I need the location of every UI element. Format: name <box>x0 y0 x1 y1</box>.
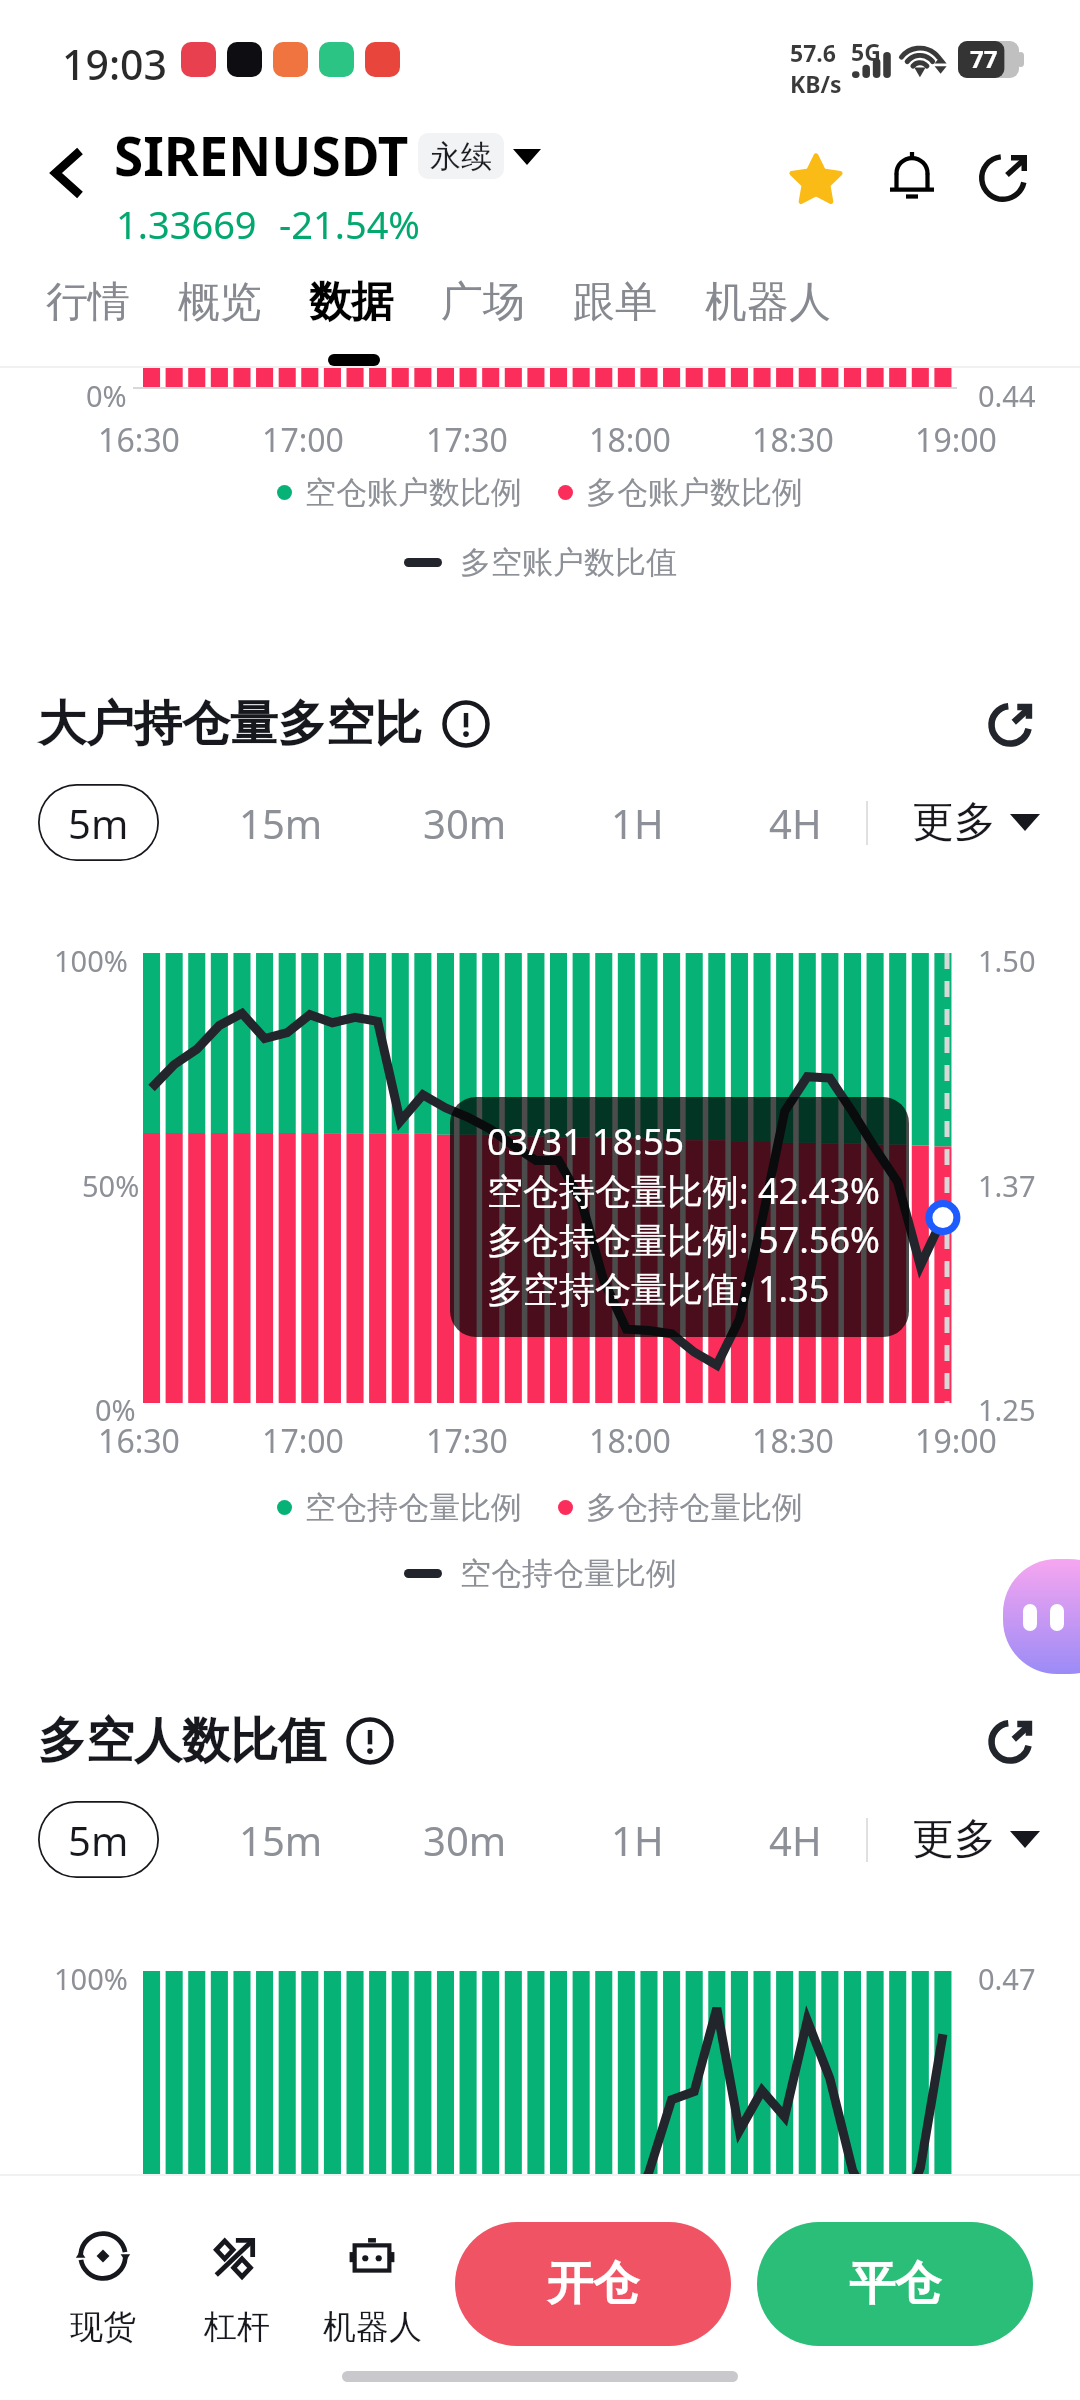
button[interactable]: 平仓 <box>757 2222 1033 2346</box>
staticText: 1.37 <box>978 1166 1036 1205</box>
staticText: 18:30 <box>723 1419 863 1463</box>
staticText: 空仓账户数比例 <box>305 473 522 512</box>
button[interactable]: 数据 <box>309 276 393 329</box>
staticText: 0% <box>86 376 127 415</box>
staticText: -21.54% <box>279 198 420 250</box>
staticText: SIRENUSDT <box>114 119 409 191</box>
staticText: 多仓持仓量比例: 57.56% <box>487 1215 880 1264</box>
button[interactable]: 跟单 <box>573 276 657 329</box>
staticText: 行情 <box>46 276 130 329</box>
button[interactable]: 更多 <box>912 1801 1040 1878</box>
staticText: 大户持仓量多空比 <box>38 694 422 754</box>
staticText: 100% <box>54 1959 128 1998</box>
staticText: 平仓 <box>849 2255 941 2313</box>
button[interactable]: Share <box>965 137 1045 217</box>
staticText: 1.33669 <box>116 198 257 250</box>
button[interactable]: 机器人 <box>705 276 831 329</box>
button[interactable]: 广场 <box>441 276 525 329</box>
staticText: 18:00 <box>560 1419 700 1463</box>
staticText: KB/s <box>790 68 842 99</box>
staticText: 永续 <box>430 137 492 176</box>
staticText: 17:00 <box>233 1419 373 1463</box>
staticText: 4H <box>769 1813 822 1867</box>
staticText: 1.50 <box>978 941 1036 980</box>
button[interactable]: 5m <box>38 784 159 861</box>
button[interactable]: 更多 <box>912 784 1040 861</box>
staticText: 1H <box>611 1813 664 1867</box>
staticText: 1.25 <box>978 1390 1036 1429</box>
button[interactable]: Expand chart <box>978 694 1046 754</box>
button[interactable]: 1H <box>611 1801 664 1878</box>
staticText: 多空账户数比值 <box>460 543 677 582</box>
staticText: 5G <box>851 36 881 67</box>
staticText: 17:00 <box>233 418 373 462</box>
button[interactable]: 永续 <box>418 133 504 179</box>
staticText: 多空持仓量比值: 1.35 <box>487 1264 830 1313</box>
staticText: 机器人 <box>323 2306 422 2348</box>
staticText: 概览 <box>178 276 262 329</box>
button[interactable]: 杠杆 <box>172 2228 302 2348</box>
staticText: 空仓持仓量比例 <box>305 1488 522 1527</box>
button[interactable]: 1H <box>611 784 664 861</box>
staticText: 17:30 <box>397 418 537 462</box>
staticText: 17:30 <box>397 1419 537 1463</box>
button[interactable]: 4H <box>769 784 822 861</box>
button[interactable]: 30m <box>423 784 507 861</box>
button[interactable]: 开仓 <box>455 2222 731 2346</box>
staticText: 更多 <box>912 796 996 849</box>
staticText: 5m <box>68 796 129 850</box>
button[interactable]: 30m <box>423 1801 507 1878</box>
button[interactable]: 5m <box>38 1801 159 1878</box>
button[interactable]: 机器人 <box>307 2228 437 2348</box>
staticText: 30m <box>423 796 507 850</box>
staticText: 57.6 <box>790 37 836 68</box>
staticText: 现货 <box>70 2306 136 2348</box>
staticText: 0.44 <box>978 376 1036 415</box>
button[interactable]: 15m <box>239 1801 323 1878</box>
staticText: 18:30 <box>723 418 863 462</box>
staticText: 19:03 <box>62 36 167 92</box>
button[interactable]: Back <box>28 132 110 214</box>
staticText: 跟单 <box>573 276 657 329</box>
staticText: 19:00 <box>886 418 1026 462</box>
staticText: 77 <box>970 42 998 75</box>
staticText: 空仓持仓量比例 <box>460 1554 677 1593</box>
staticText: 16:30 <box>69 418 209 462</box>
staticText: 5m <box>68 1813 129 1867</box>
button[interactable]: 现货 <box>38 2228 168 2348</box>
staticText: 机器人 <box>705 276 831 329</box>
button[interactable]: 概览 <box>178 276 262 329</box>
staticText: 19:00 <box>886 1419 1026 1463</box>
staticText: 数据 <box>309 276 393 329</box>
button[interactable]: Expand chart <box>978 1711 1046 1771</box>
staticText: 15m <box>239 1813 323 1867</box>
staticText: 杠杆 <box>204 2306 270 2348</box>
button[interactable]: 大户持仓量多空比 <box>38 694 490 754</box>
staticText: 多仓账户数比例 <box>586 473 803 512</box>
staticText: 1H <box>611 796 664 850</box>
staticText: 开仓 <box>547 2255 639 2313</box>
staticText: 03/31 18:55 <box>487 1117 685 1166</box>
button[interactable]: 15m <box>239 784 323 861</box>
button[interactable]: Notifications <box>872 135 952 215</box>
staticText: 多仓持仓量比例 <box>586 1488 803 1527</box>
staticText: 4H <box>769 796 822 850</box>
staticText: 0% <box>95 1390 136 1429</box>
staticText: 0.47 <box>978 1959 1036 1998</box>
staticText: 18:00 <box>560 418 700 462</box>
staticText: 30m <box>423 1813 507 1867</box>
staticText: 16:30 <box>69 1419 209 1463</box>
staticText: 50% <box>82 1166 140 1205</box>
button[interactable]: 4H <box>769 1801 822 1878</box>
button[interactable]: Favorite <box>776 138 856 218</box>
staticText: 空仓持仓量比例: 42.43% <box>487 1166 880 1215</box>
staticText: 100% <box>54 941 128 980</box>
staticText: 广场 <box>441 276 525 329</box>
button[interactable]: AI assistant <box>1003 1559 1080 1674</box>
button[interactable]: 多空人数比值 <box>38 1711 394 1771</box>
staticText: 更多 <box>912 1813 996 1866</box>
staticText: 多空人数比值 <box>38 1711 326 1771</box>
staticText: 15m <box>239 796 323 850</box>
button[interactable]: 行情 <box>46 276 130 329</box>
